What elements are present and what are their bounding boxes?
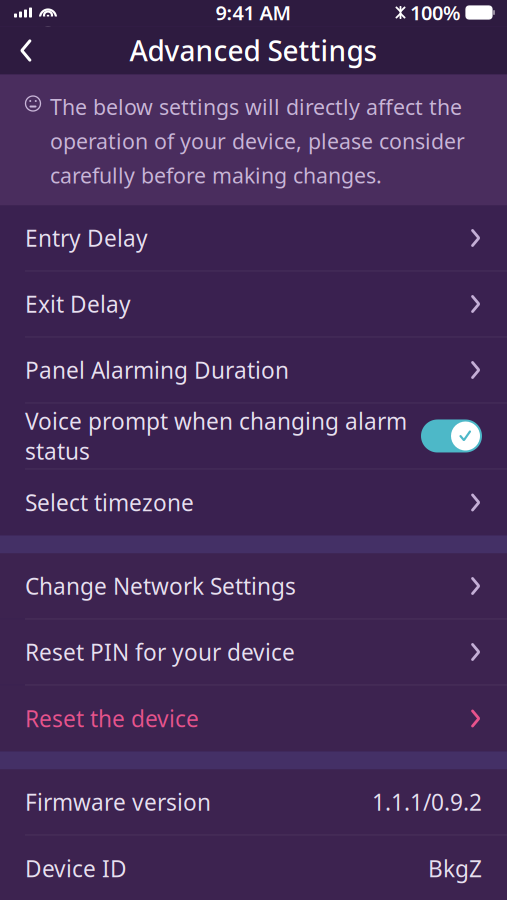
button[interactable]: Panel Alarming Duration <box>0 337 507 403</box>
staticText: 100% <box>410 0 461 26</box>
staticText: Exit Delay <box>25 289 131 319</box>
button[interactable]: Back <box>0 26 52 74</box>
staticText: Reset the device <box>25 703 199 733</box>
button[interactable]: Entry Delay <box>0 205 507 271</box>
staticText: Select timezone <box>25 487 194 517</box>
staticText: Reset PIN for your device <box>25 637 295 667</box>
staticText: Device ID <box>25 853 127 883</box>
button[interactable]: Change Network Settings <box>0 553 507 619</box>
staticText: Panel Alarming Duration <box>25 355 289 385</box>
button[interactable]: Select timezone <box>0 469 507 535</box>
button[interactable]: Voice prompt when changing alarm status <box>0 403 507 469</box>
staticText: 1.1.1/0.9.2 <box>372 787 482 817</box>
staticText: Change Network Settings <box>25 571 296 601</box>
staticText: Firmware version <box>25 787 211 817</box>
staticText: BkgZ <box>428 853 482 883</box>
staticText: 9:41 AM <box>215 0 291 26</box>
button[interactable]: Reset the device <box>0 685 507 751</box>
staticText: Voice prompt when changing alarm status <box>25 406 407 466</box>
button[interactable]: Reset PIN for your device <box>0 619 507 685</box>
staticText: The below settings will directly affect … <box>50 92 465 189</box>
staticText: Entry Delay <box>25 223 148 253</box>
staticText: Advanced Settings <box>129 32 377 69</box>
button[interactable]: Exit Delay <box>0 271 507 337</box>
